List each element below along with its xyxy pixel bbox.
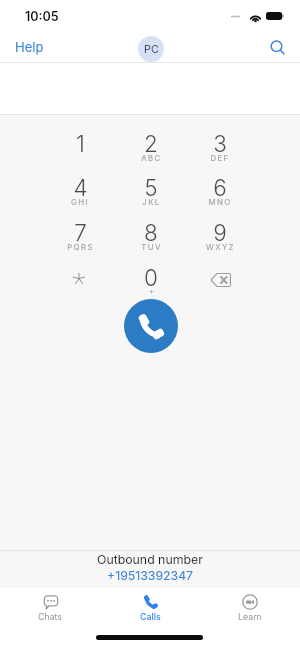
staticText: DEF	[210, 153, 230, 162]
button[interactable]: Chats	[13, 591, 87, 623]
staticText: 10:05	[25, 9, 59, 24]
button[interactable]: Learn	[213, 591, 287, 623]
button[interactable]	[47, 124, 113, 166]
staticText: Outbound number	[97, 552, 203, 567]
staticText: 1	[76, 130, 85, 157]
button[interactable]: Calls	[113, 591, 187, 623]
button[interactable]: Call	[124, 299, 178, 353]
button[interactable]: PC	[138, 36, 164, 62]
staticText: Chats	[38, 611, 63, 622]
staticText: 0	[144, 264, 158, 291]
staticText: ABC	[141, 153, 162, 162]
button[interactable]	[118, 213, 184, 255]
button[interactable]: Help	[4, 32, 56, 60]
staticText: +	[149, 287, 154, 296]
staticText: Calls	[140, 611, 161, 622]
staticText: 5	[144, 174, 158, 201]
button[interactable]	[187, 168, 253, 210]
staticText: 2	[144, 130, 158, 157]
staticText: 8	[144, 219, 158, 246]
button[interactable]: Outbound number	[0, 551, 300, 588]
button[interactable]	[187, 124, 253, 166]
staticText: 6	[213, 174, 227, 201]
staticText: 4	[73, 174, 88, 201]
staticText: JKL	[142, 197, 161, 206]
button[interactable]	[47, 258, 113, 300]
button[interactable]	[118, 168, 184, 210]
button[interactable]: Search	[263, 33, 293, 63]
staticText: +19513392347	[107, 568, 194, 583]
button[interactable]	[47, 213, 113, 255]
staticText: PQRS	[67, 242, 94, 251]
staticText: 3	[213, 130, 227, 157]
staticText: PC	[144, 43, 159, 56]
staticText: MNO	[208, 197, 232, 206]
staticText: GHI	[71, 197, 89, 206]
staticText: WXYZ	[206, 242, 235, 251]
button[interactable]	[187, 213, 253, 255]
staticText: 9	[213, 219, 227, 246]
button[interactable]	[118, 124, 184, 166]
button[interactable]: Backspace	[187, 258, 253, 300]
button[interactable]	[47, 168, 113, 210]
staticText: 7	[74, 219, 87, 246]
button[interactable]	[118, 258, 184, 300]
staticText: Help	[15, 39, 44, 55]
staticText: Learn	[238, 611, 262, 622]
staticText: TUV	[141, 242, 162, 251]
